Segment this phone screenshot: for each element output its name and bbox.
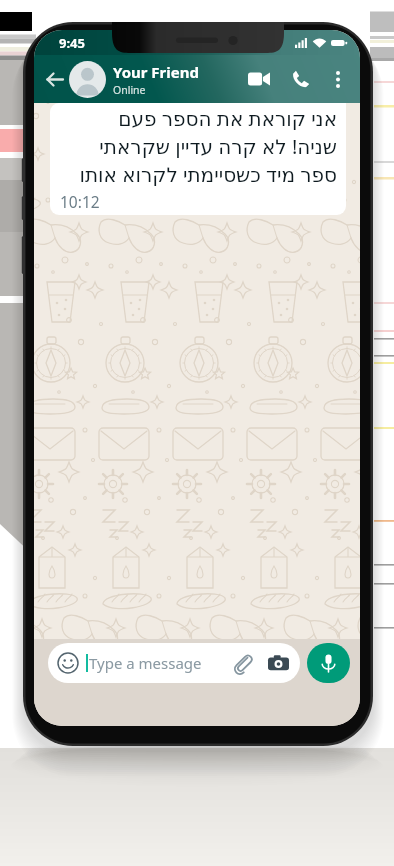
button[interactable]: Voice message: [307, 643, 350, 683]
button[interactable]: Call: [286, 64, 316, 94]
button[interactable]: Attach: [232, 653, 253, 674]
staticText: 9:45: [59, 34, 85, 52]
staticText: Online: [113, 83, 146, 97]
button[interactable]: More options: [325, 66, 351, 92]
button[interactable]: Camera: [268, 653, 289, 674]
staticText: אני קוראת את הספר פעם שניה! לא קרה עדיין…: [60, 105, 337, 188]
staticText: 10:12: [60, 191, 100, 212]
button[interactable]: Video call: [244, 64, 274, 94]
button[interactable]: Back: [42, 67, 66, 91]
button[interactable]: Type a message: [48, 643, 300, 683]
button[interactable]: אני קוראת את הספר פעם שניה! לא קרה עדיין…: [50, 103, 346, 215]
staticText: Your Friend: [113, 62, 199, 82]
staticText: Type a message: [89, 653, 202, 673]
